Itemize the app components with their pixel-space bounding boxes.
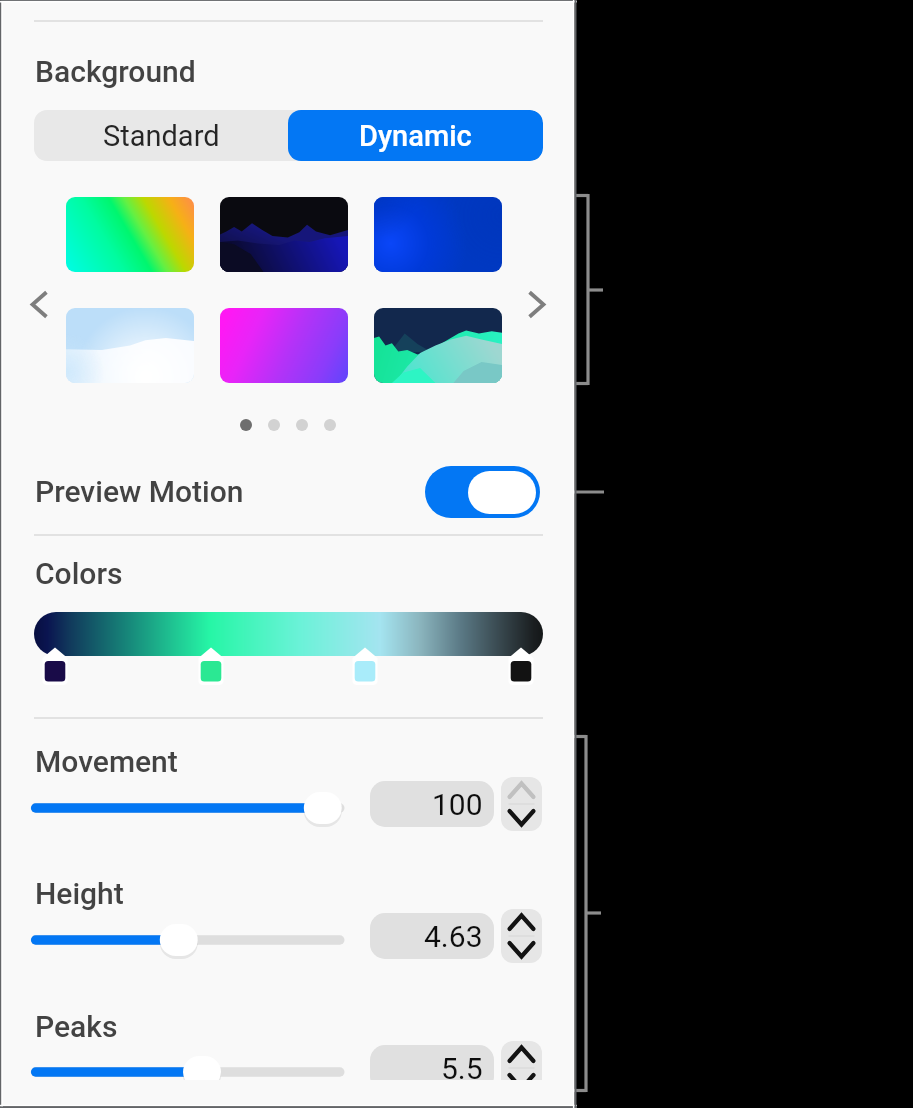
- button[interactable]: Peaks slider: [24, 1050, 354, 1080]
- button[interactable]: Page 4: [324, 419, 336, 431]
- button[interactable]: Movement value: [370, 781, 494, 827]
- staticText: Standard: [103, 119, 220, 153]
- staticText: Colors: [35, 556, 123, 591]
- button[interactable]: Page 3: [296, 419, 308, 431]
- button[interactable]: Wallpaper 6: [374, 308, 502, 383]
- button[interactable]: Height slider: [24, 918, 354, 962]
- button[interactable]: Colour gradient: [34, 612, 543, 656]
- button[interactable]: Wallpaper 4: [66, 308, 194, 383]
- button[interactable]: Decrease Movement: [501, 804, 542, 831]
- button[interactable]: Wallpaper 3: [374, 197, 502, 272]
- staticText: 100: [432, 787, 483, 822]
- button[interactable]: Wallpaper 1: [66, 197, 194, 272]
- staticText: 5.5: [441, 1051, 483, 1080]
- button[interactable]: Height value: [370, 913, 494, 959]
- button[interactable]: Decrease Height: [501, 936, 542, 963]
- button[interactable]: Dynamic: [288, 110, 543, 161]
- button[interactable]: Increase Height: [501, 909, 542, 936]
- button[interactable]: Page 2: [268, 419, 280, 431]
- button[interactable]: Increase Movement: [501, 777, 542, 804]
- staticText: Dynamic: [359, 119, 472, 153]
- button[interactable]: Page 1: [240, 419, 252, 431]
- button[interactable]: Preview Motion: [425, 466, 540, 518]
- button[interactable]: Colour stop: [42, 647, 68, 685]
- button[interactable]: Wallpaper 5: [220, 308, 348, 383]
- button[interactable]: Colour stop: [198, 647, 224, 685]
- button[interactable]: Movement slider: [24, 786, 354, 830]
- staticText: Movement: [35, 744, 178, 779]
- staticText: Preview Motion: [35, 474, 244, 509]
- staticText: Height: [35, 876, 124, 911]
- button[interactable]: Increase Peaks: [501, 1041, 542, 1068]
- button[interactable]: Colour stop: [508, 647, 534, 685]
- button[interactable]: Next wallpapers: [510, 283, 554, 327]
- button[interactable]: Colour stop: [352, 647, 378, 685]
- button[interactable]: Previous wallpapers: [20, 283, 64, 327]
- staticText: Peaks: [35, 1009, 118, 1044]
- staticText: Background: [35, 54, 196, 89]
- button[interactable]: Wallpaper 2: [220, 197, 348, 272]
- button[interactable]: Standard: [34, 110, 288, 161]
- button[interactable]: Peaks value: [370, 1045, 494, 1080]
- button[interactable]: Decrease Peaks: [501, 1068, 542, 1080]
- staticText: 4.63: [424, 919, 483, 954]
